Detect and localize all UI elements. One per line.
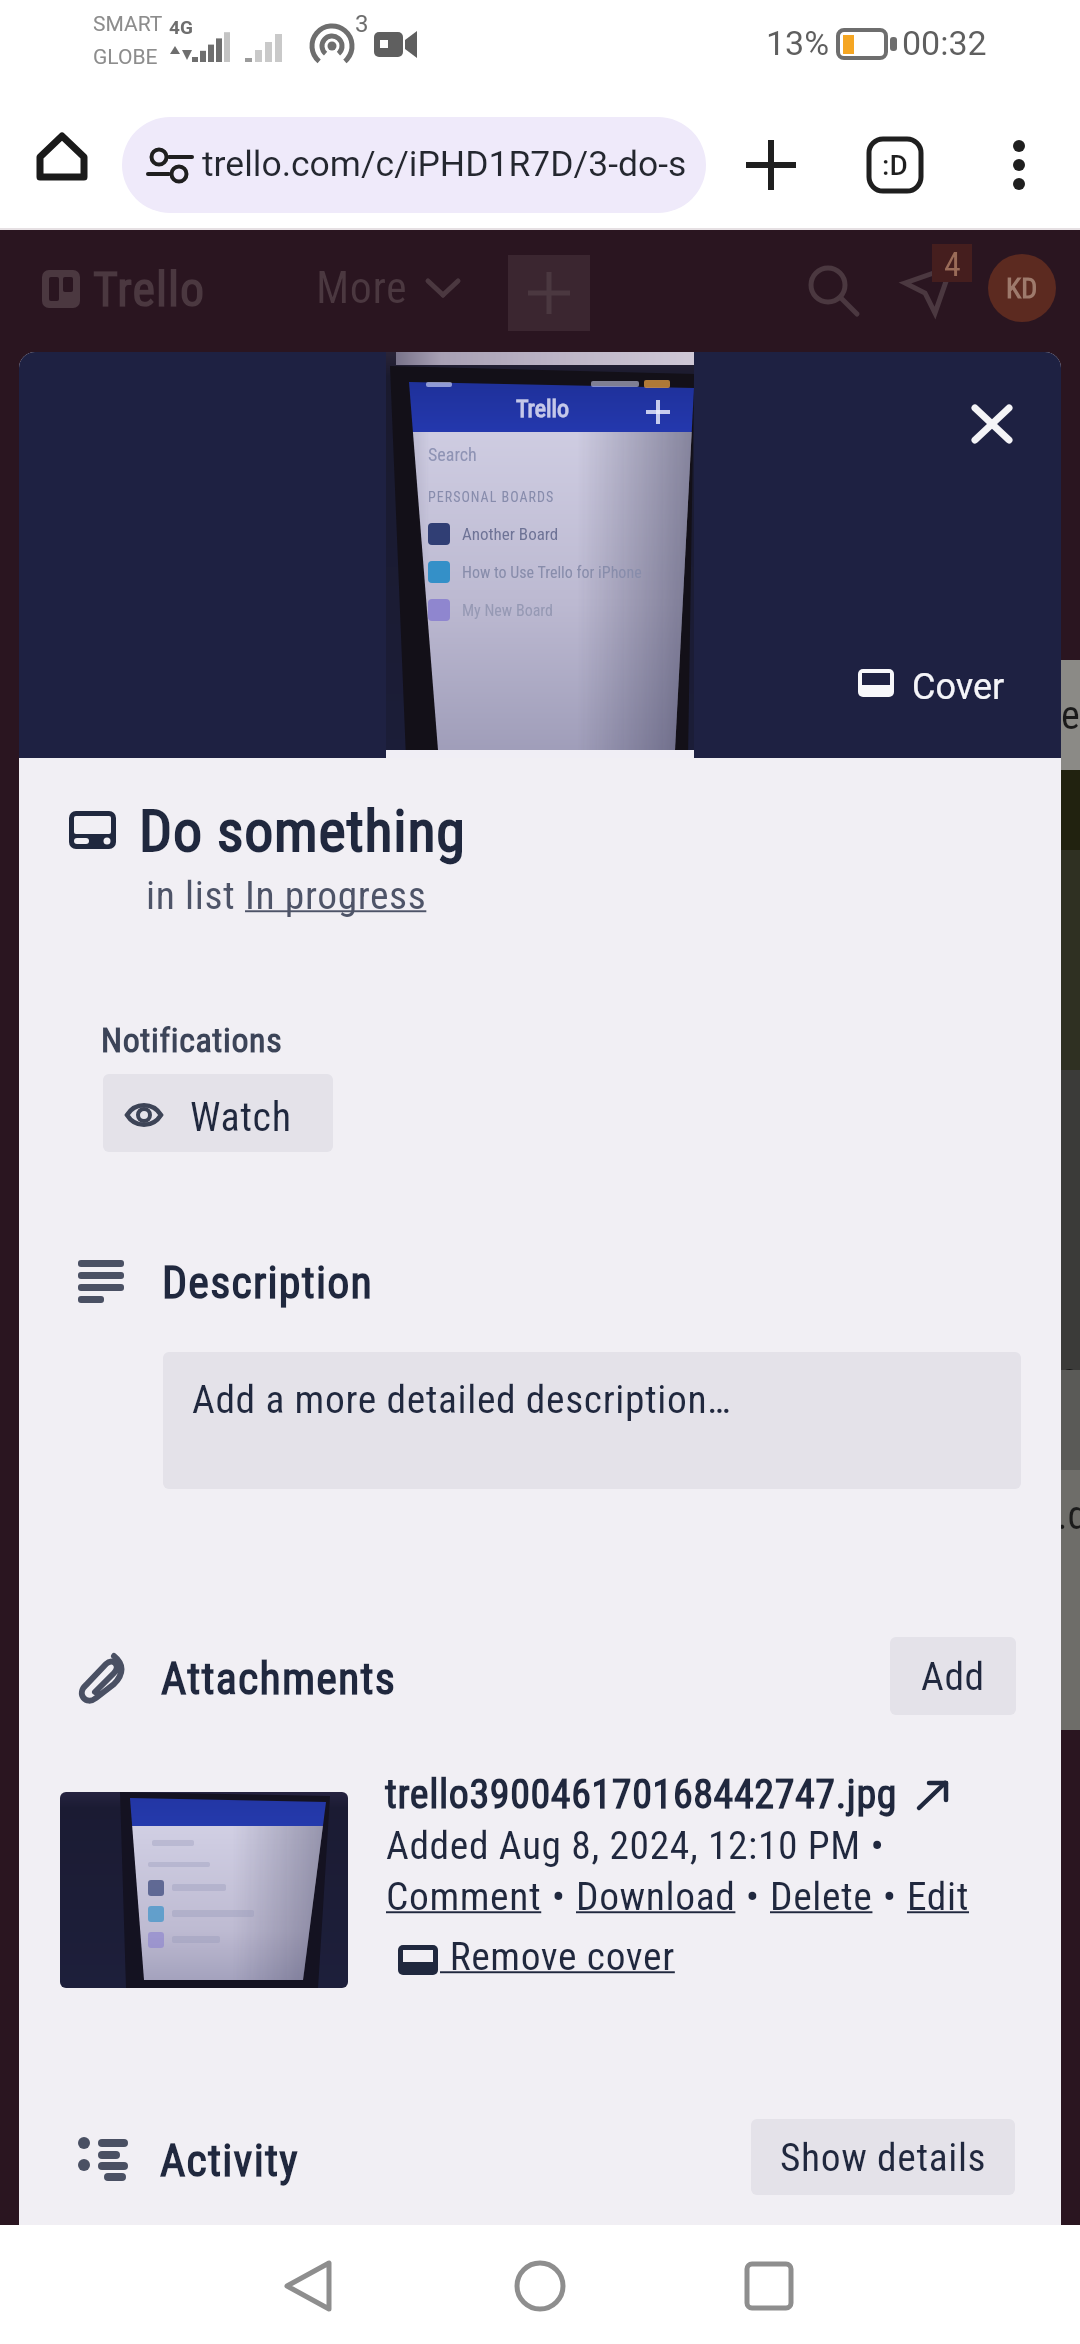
button[interactable]: Recents — [714, 2231, 824, 2341]
button[interactable]: Home — [485, 2231, 595, 2341]
staticText: Description — [162, 1257, 374, 1309]
button[interactable]: Remove cover — [398, 1933, 675, 1979]
staticText: Added Aug 8, 2024, 12:10 PM • — [386, 1822, 885, 1868]
button[interactable]: Back — [253, 2231, 363, 2341]
button[interactable]: New tab — [728, 122, 814, 208]
staticText: Remove cover — [440, 1933, 675, 1979]
staticText: • — [542, 1873, 576, 1919]
staticText: trello.com/c/iPHD1R7D/3-do-s — [202, 143, 687, 185]
button[interactable]: Create — [508, 255, 590, 331]
button[interactable]: In progress — [245, 872, 427, 918]
staticText: Notifications — [101, 1020, 283, 1060]
staticText: 3 — [355, 10, 369, 38]
staticText: Do something — [139, 797, 466, 865]
button[interactable]: Home — [18, 112, 106, 200]
staticText: 00:32 — [902, 23, 987, 63]
staticText: Activity — [160, 2135, 299, 2187]
staticText: Add a more detailed description… — [192, 1376, 732, 1422]
staticText: • — [873, 1873, 907, 1919]
button[interactable]: trello.com/c/iPHD1R7D/3-do-s — [122, 117, 706, 213]
button[interactable]: Add — [890, 1637, 1016, 1715]
button[interactable]: Notifications — [890, 252, 970, 332]
staticText: Add — [921, 1653, 985, 1699]
staticText: Trello — [516, 395, 570, 423]
button[interactable]: Comment — [386, 1873, 542, 1919]
staticText: 4G — [169, 16, 193, 38]
staticText: Show details — [780, 2134, 987, 2180]
staticText: .d — [1057, 1492, 1076, 1539]
button[interactable]: More — [306, 252, 470, 324]
button[interactable]: Edit — [907, 1873, 970, 1919]
button[interactable]: Download — [576, 1873, 736, 1919]
staticText: How to Use Trello for iPhone — [462, 563, 642, 582]
button[interactable] — [60, 1792, 348, 1988]
button[interactable]: More options — [976, 122, 1062, 208]
button[interactable]: Show details — [751, 2119, 1015, 2195]
staticText: Watch — [190, 1094, 292, 1141]
staticText: More — [316, 262, 408, 314]
staticText: Another Board — [462, 524, 559, 544]
staticText: 13% — [766, 23, 830, 63]
staticText: :D — [882, 149, 908, 182]
staticText: 4 — [944, 244, 961, 282]
staticText: Cover — [912, 666, 1005, 708]
button[interactable]: Watch — [103, 1074, 333, 1152]
staticText: • — [736, 1873, 770, 1919]
staticText: e — [1061, 692, 1080, 739]
button[interactable]: Cover — [844, 649, 957, 711]
staticText: Attachments — [161, 1653, 397, 1705]
button[interactable]: Search — [795, 252, 875, 332]
staticText: My New Board — [462, 601, 553, 620]
button[interactable]: KD — [988, 254, 1056, 322]
staticText: 0( — [1059, 1360, 1078, 1458]
staticText: Trello — [93, 261, 206, 317]
button[interactable]: trello390046170168442747.jpg — [385, 1771, 898, 1818]
staticText: KD — [1006, 272, 1038, 305]
button[interactable]: Close — [944, 376, 1040, 472]
staticText: SMART — [93, 12, 163, 37]
button[interactable]: Add a more detailed description… — [163, 1352, 1021, 1489]
staticText: PERSONAL BOARDS — [428, 489, 555, 505]
staticText: GLOBE — [93, 45, 158, 70]
staticText: Search — [428, 444, 477, 465]
button[interactable]: Delete — [770, 1873, 873, 1919]
staticText: in list — [146, 872, 245, 918]
button[interactable]: Tabs — [852, 122, 938, 208]
